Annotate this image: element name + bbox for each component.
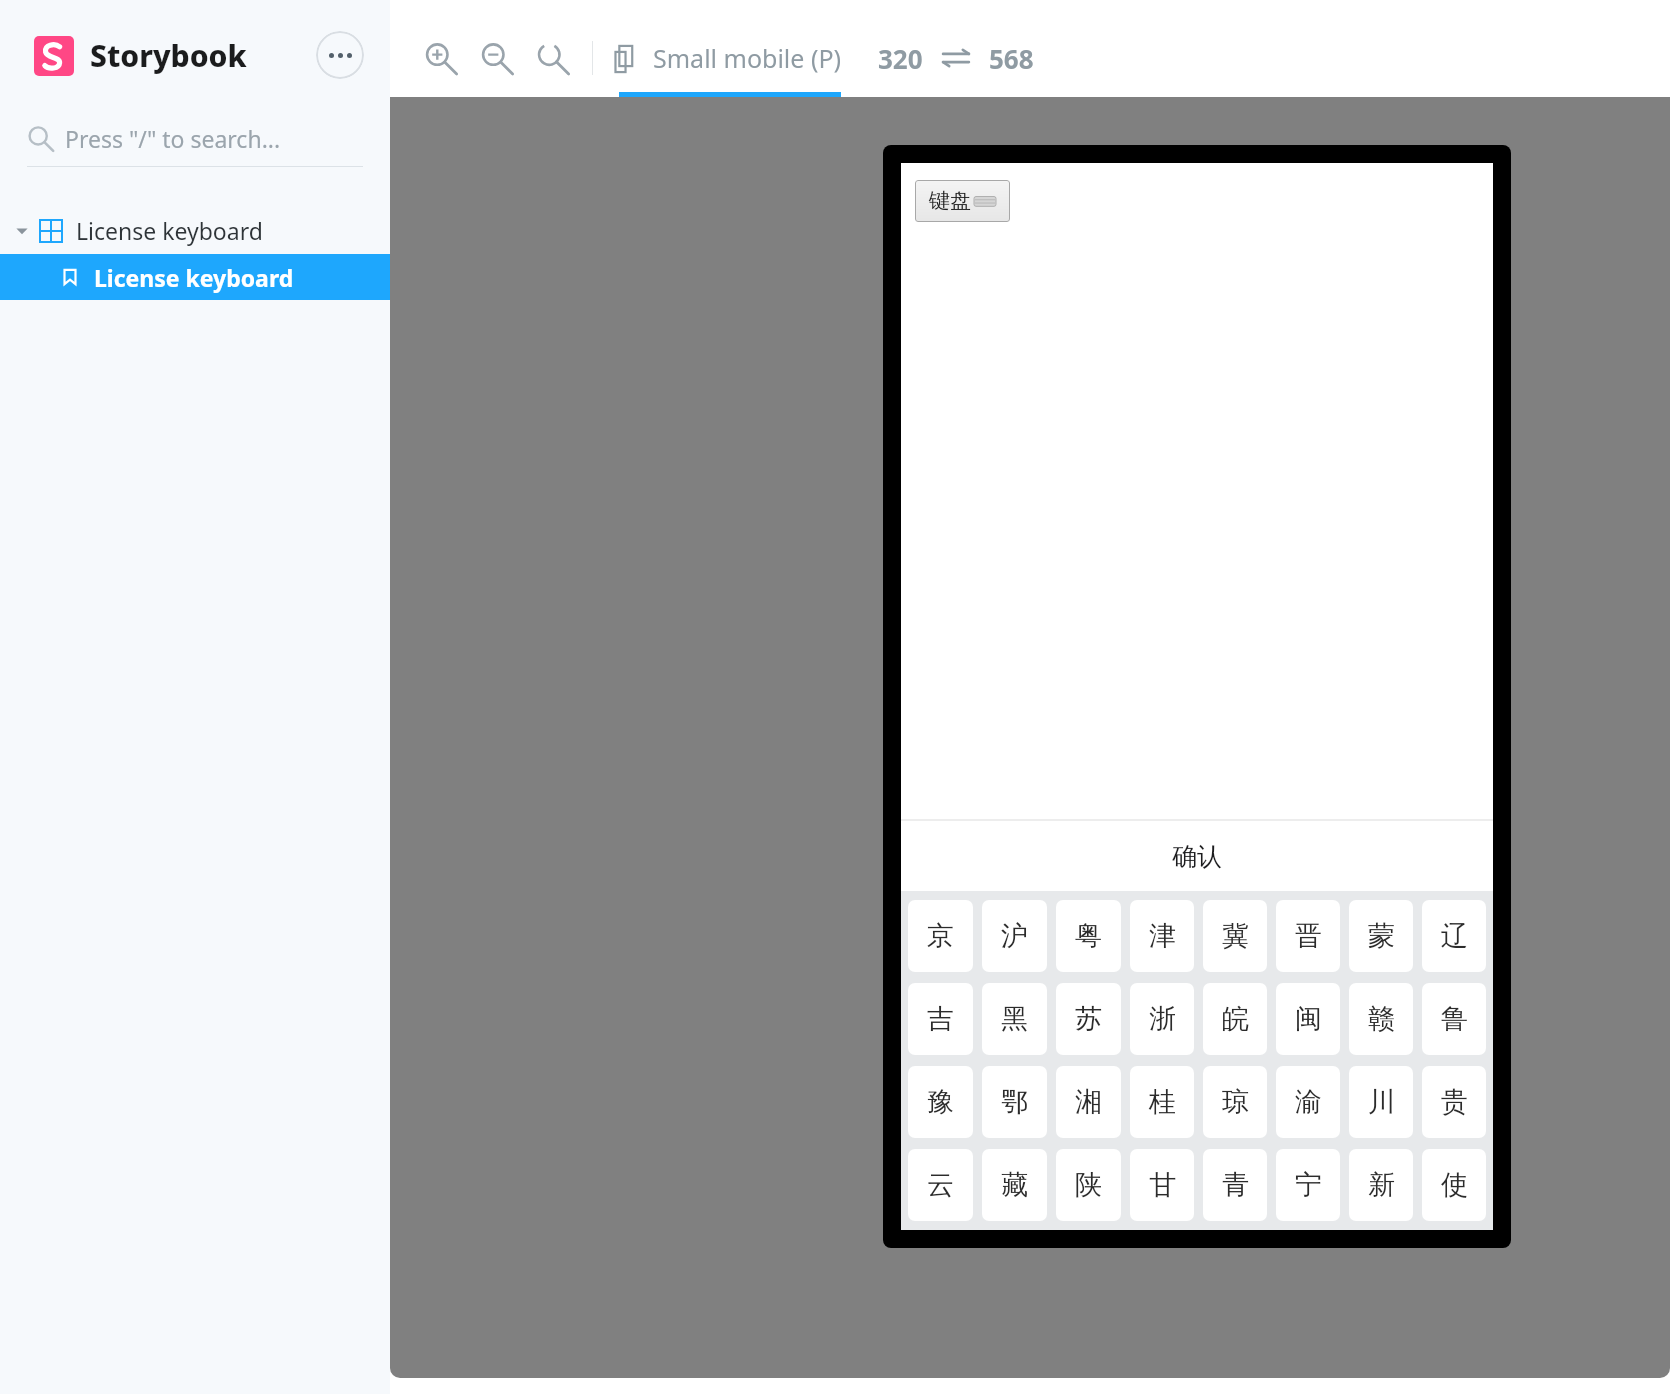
- button[interactable]: 黑: [982, 983, 1047, 1055]
- staticText: 宁: [1295, 1168, 1322, 1202]
- button[interactable]: 藏: [982, 1149, 1047, 1221]
- button[interactable]: 确认: [901, 821, 1493, 891]
- button[interactable]: 鲁: [1422, 983, 1486, 1055]
- button[interactable]: 湘: [1056, 1066, 1121, 1138]
- button[interactable]: Swap dimensions: [939, 41, 973, 75]
- staticText: 辽: [1441, 919, 1468, 953]
- staticText: 蒙: [1368, 919, 1395, 953]
- button[interactable]: 晋: [1276, 900, 1340, 972]
- button[interactable]: 苏: [1056, 983, 1121, 1055]
- staticText: 甘: [1149, 1168, 1176, 1202]
- staticText: 沪: [1001, 919, 1028, 953]
- button[interactable]: 吉: [908, 983, 973, 1055]
- button[interactable]: 皖: [1203, 983, 1267, 1055]
- button[interactable]: 粤: [1056, 900, 1121, 972]
- staticText: 冀: [1222, 919, 1249, 953]
- staticText: 赣: [1368, 1002, 1395, 1036]
- button[interactable]: 京: [908, 900, 973, 972]
- button[interactable]: 琼: [1203, 1066, 1267, 1138]
- button[interactable]: More options: [316, 31, 364, 79]
- staticText: 黑: [1001, 1002, 1028, 1036]
- staticText: 云: [927, 1168, 954, 1202]
- staticText: 青: [1222, 1168, 1249, 1202]
- button[interactable]: Zoom out: [468, 30, 524, 86]
- staticText: 苏: [1075, 1002, 1102, 1036]
- button[interactable]: Storybook: [34, 35, 316, 76]
- button[interactable]: Press "/" to search...: [27, 110, 363, 166]
- button[interactable]: 贵: [1422, 1066, 1486, 1138]
- button[interactable]: 宁: [1276, 1149, 1340, 1221]
- staticText: 渝: [1295, 1085, 1322, 1119]
- staticText: 川: [1368, 1085, 1395, 1119]
- button[interactable]: 赣: [1349, 983, 1413, 1055]
- staticText: Press "/" to search...: [65, 123, 281, 154]
- staticText: 吉: [927, 1002, 954, 1036]
- staticText: 使: [1441, 1168, 1468, 1202]
- button[interactable]: License keyboard: [0, 207, 390, 254]
- staticText: 藏: [1001, 1168, 1028, 1202]
- button[interactable]: 津: [1130, 900, 1194, 972]
- staticText: 键盘: [929, 188, 971, 214]
- staticText: 粤: [1075, 919, 1102, 953]
- staticText: 桂: [1149, 1085, 1176, 1119]
- staticText: 湘: [1075, 1085, 1102, 1119]
- button[interactable]: License keyboard: [0, 254, 390, 300]
- staticText: 新: [1368, 1168, 1395, 1202]
- staticText: 鲁: [1441, 1002, 1468, 1036]
- staticText: 皖: [1222, 1002, 1249, 1036]
- button[interactable]: 豫: [908, 1066, 973, 1138]
- staticText: 贵: [1441, 1085, 1468, 1119]
- button[interactable]: 鄂: [982, 1066, 1047, 1138]
- staticText: Storybook: [90, 35, 247, 76]
- staticText: 京: [927, 919, 954, 953]
- staticText: 鄂: [1001, 1085, 1028, 1119]
- staticText: Small mobile (P): [653, 41, 842, 75]
- staticText: 津: [1149, 919, 1176, 953]
- button[interactable]: 川: [1349, 1066, 1413, 1138]
- staticText: 琼: [1222, 1085, 1249, 1119]
- staticText: 320: [878, 41, 923, 76]
- button[interactable]: 闽: [1276, 983, 1340, 1055]
- button[interactable]: Small mobile (P): [611, 19, 842, 97]
- staticText: 确认: [1172, 841, 1222, 872]
- button[interactable]: Zoom in: [412, 30, 468, 86]
- staticText: License keyboard: [76, 215, 263, 246]
- button[interactable]: 蒙: [1349, 900, 1413, 972]
- staticText: 浙: [1149, 1002, 1176, 1036]
- button[interactable]: 使: [1422, 1149, 1486, 1221]
- button[interactable]: 甘: [1130, 1149, 1194, 1221]
- button[interactable]: Reset zoom: [524, 30, 580, 86]
- staticText: 陕: [1075, 1168, 1102, 1202]
- button[interactable]: 渝: [1276, 1066, 1340, 1138]
- staticText: 晋: [1295, 919, 1322, 953]
- button[interactable]: 浙: [1130, 983, 1194, 1055]
- button[interactable]: 青: [1203, 1149, 1267, 1221]
- button[interactable]: 沪: [982, 900, 1047, 972]
- button[interactable]: 桂: [1130, 1066, 1194, 1138]
- staticText: 568: [989, 41, 1034, 76]
- button[interactable]: 冀: [1203, 900, 1267, 972]
- staticText: 闽: [1295, 1002, 1322, 1036]
- button[interactable]: 陕: [1056, 1149, 1121, 1221]
- button[interactable]: 键盘: [915, 180, 1010, 222]
- staticText: 豫: [927, 1085, 954, 1119]
- button[interactable]: 辽: [1422, 900, 1486, 972]
- button[interactable]: 新: [1349, 1149, 1413, 1221]
- staticText: License keyboard: [94, 262, 294, 293]
- button[interactable]: 云: [908, 1149, 973, 1221]
